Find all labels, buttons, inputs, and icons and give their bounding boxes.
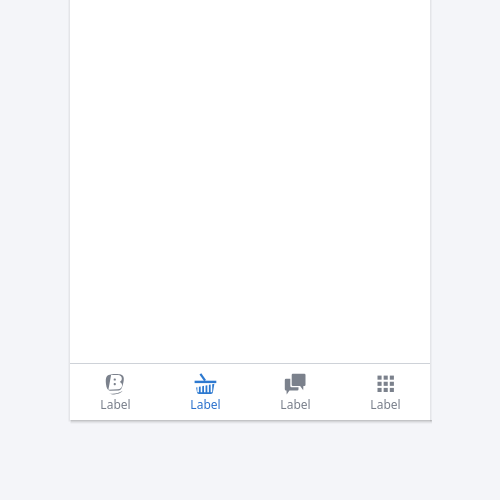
button[interactable]: Label: [160, 364, 250, 420]
staticText: Label: [280, 396, 311, 412]
staticText: Label: [100, 396, 131, 412]
button[interactable]: Label: [340, 364, 430, 420]
staticText: Label: [190, 396, 221, 412]
staticText: Label: [370, 396, 401, 412]
button[interactable]: Label: [250, 364, 340, 420]
button[interactable]: Label: [70, 364, 160, 420]
